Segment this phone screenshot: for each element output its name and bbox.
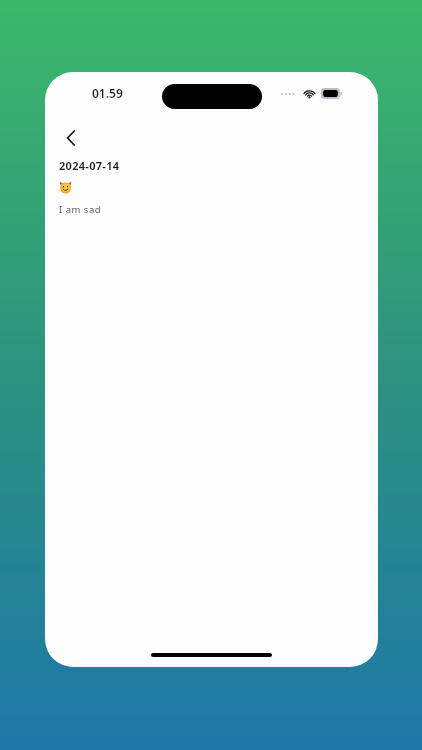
button[interactable]: Back — [53, 120, 89, 156]
staticText: I am sad — [59, 203, 102, 216]
staticText: 2024-07-14 — [59, 158, 120, 173]
staticText: 01.59 — [92, 85, 123, 101]
